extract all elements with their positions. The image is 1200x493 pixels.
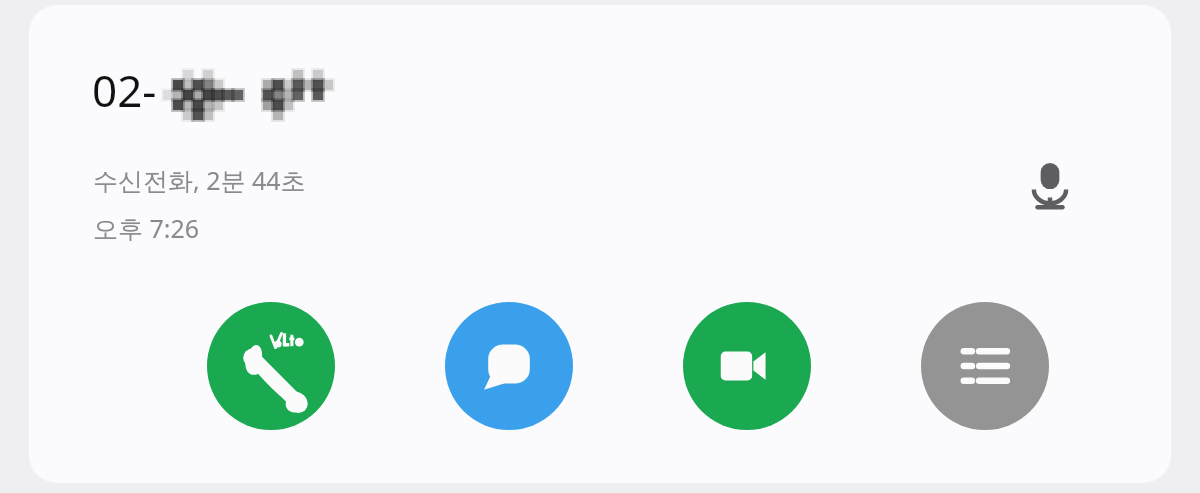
staticText: 수신전화, 2분 44초 [93, 163, 306, 197]
button[interactable]: Call details [921, 302, 1049, 430]
button[interactable]: Video call [683, 302, 811, 430]
staticText: 오후 7:26 [93, 211, 200, 245]
button[interactable]: Call recording [1014, 150, 1086, 222]
button[interactable]: VoLTE call [207, 302, 335, 430]
button[interactable]: Send message [445, 302, 573, 430]
staticText: 02- [92, 60, 157, 120]
